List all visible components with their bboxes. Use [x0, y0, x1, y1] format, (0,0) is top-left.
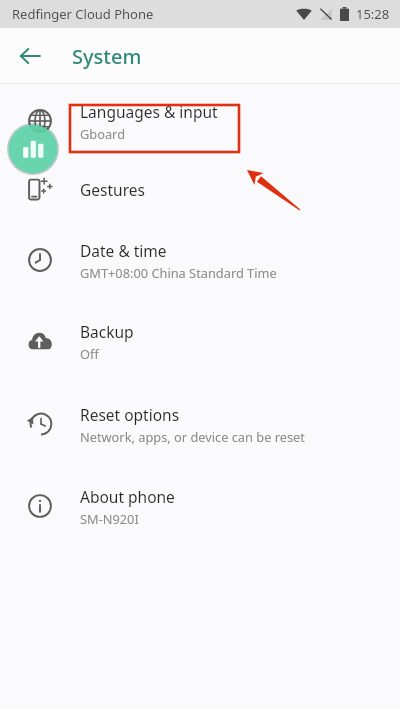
button[interactable]: Floating assistant — [7, 123, 59, 175]
staticText: Date & time — [80, 240, 167, 261]
staticText: 15:28 — [356, 5, 390, 23]
staticText: Backup — [80, 321, 134, 342]
staticText: About phone — [80, 486, 175, 507]
button[interactable]: Gestures — [0, 158, 400, 220]
staticText: GMT+08:00 China Standard Time — [80, 264, 277, 281]
staticText: Gboard — [80, 125, 126, 142]
staticText: Off — [80, 345, 99, 362]
button[interactable]: Backup — [0, 300, 400, 382]
staticText: Gestures — [80, 179, 145, 200]
staticText: Languages & input — [80, 101, 218, 122]
button[interactable]: Languages & input — [0, 84, 400, 158]
staticText: Redfinger Cloud Phone — [12, 5, 154, 23]
button[interactable]: Date & time — [0, 220, 400, 300]
button[interactable]: Back — [8, 34, 52, 78]
staticText: Network, apps, or device can be reset — [80, 428, 305, 445]
staticText: Reset options — [80, 404, 180, 425]
staticText: SM-N920I — [80, 510, 139, 527]
staticText: System — [72, 43, 142, 70]
button[interactable]: About phone — [0, 466, 400, 546]
button[interactable]: Reset options — [0, 382, 400, 466]
